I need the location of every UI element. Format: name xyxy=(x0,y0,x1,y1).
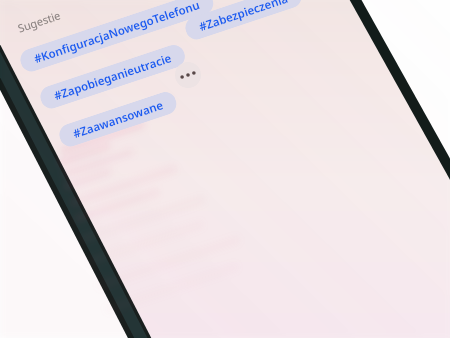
button[interactable]: #KonfiguracjaNowegoTelefonu xyxy=(17,0,216,74)
staticText: #Zabezpieczenia xyxy=(197,0,290,35)
button[interactable]: More options xyxy=(175,62,201,88)
staticText: Sugestie xyxy=(16,7,63,36)
staticText: #Zapobieganieutracie xyxy=(52,50,174,104)
button[interactable]: Sugestie xyxy=(16,7,63,36)
button[interactable]: #Zapobieganieutracie xyxy=(37,42,188,111)
button[interactable]: #Zaawansowane xyxy=(56,89,179,149)
staticText: #KonfiguracjaNowegoTelefonu xyxy=(32,0,202,67)
button[interactable]: #Zabezpieczenia xyxy=(182,0,304,42)
staticText: #Zaawansowane xyxy=(71,97,165,142)
